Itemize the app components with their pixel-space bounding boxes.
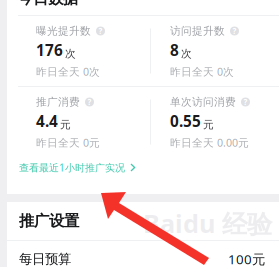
staticText: ?: [243, 97, 247, 107]
staticText: 0.55: [170, 111, 201, 131]
staticText: ?: [232, 26, 236, 36]
staticText: 每日预算: [19, 251, 71, 267]
staticText: 昨日全天 0次: [36, 64, 100, 79]
button[interactable]: 查看最近1小时推广实况: [7, 157, 279, 194]
staticText: 单次访问消费: [170, 95, 236, 109]
staticText: ?: [98, 26, 102, 36]
staticText: 昨日全天 0.00元: [170, 135, 249, 150]
staticText: 查看最近1小时推广实况: [19, 161, 125, 174]
staticText: 4.4: [36, 111, 58, 131]
staticText: Baidu 经验: [143, 206, 272, 241]
button[interactable]: 每日预算: [7, 241, 279, 267]
staticText: 推广消费: [36, 95, 80, 109]
staticText: 推广设置: [19, 211, 79, 231]
staticText: 次: [181, 47, 192, 60]
staticText: 今日数据: [18, 0, 78, 8]
staticText: 8: [170, 40, 179, 60]
staticText: ?: [87, 97, 91, 107]
staticText: 元: [203, 118, 214, 131]
staticText: 昨日全天 0次: [170, 64, 234, 79]
staticText: 访问提升数: [170, 24, 225, 38]
staticText: 曝光提升数: [36, 24, 91, 38]
staticText: 次: [65, 47, 76, 60]
staticText: 176: [36, 40, 63, 60]
staticText: 昨日全天 0元: [36, 135, 100, 150]
staticText: 元: [60, 118, 71, 131]
staticText: 100元: [228, 250, 265, 267]
